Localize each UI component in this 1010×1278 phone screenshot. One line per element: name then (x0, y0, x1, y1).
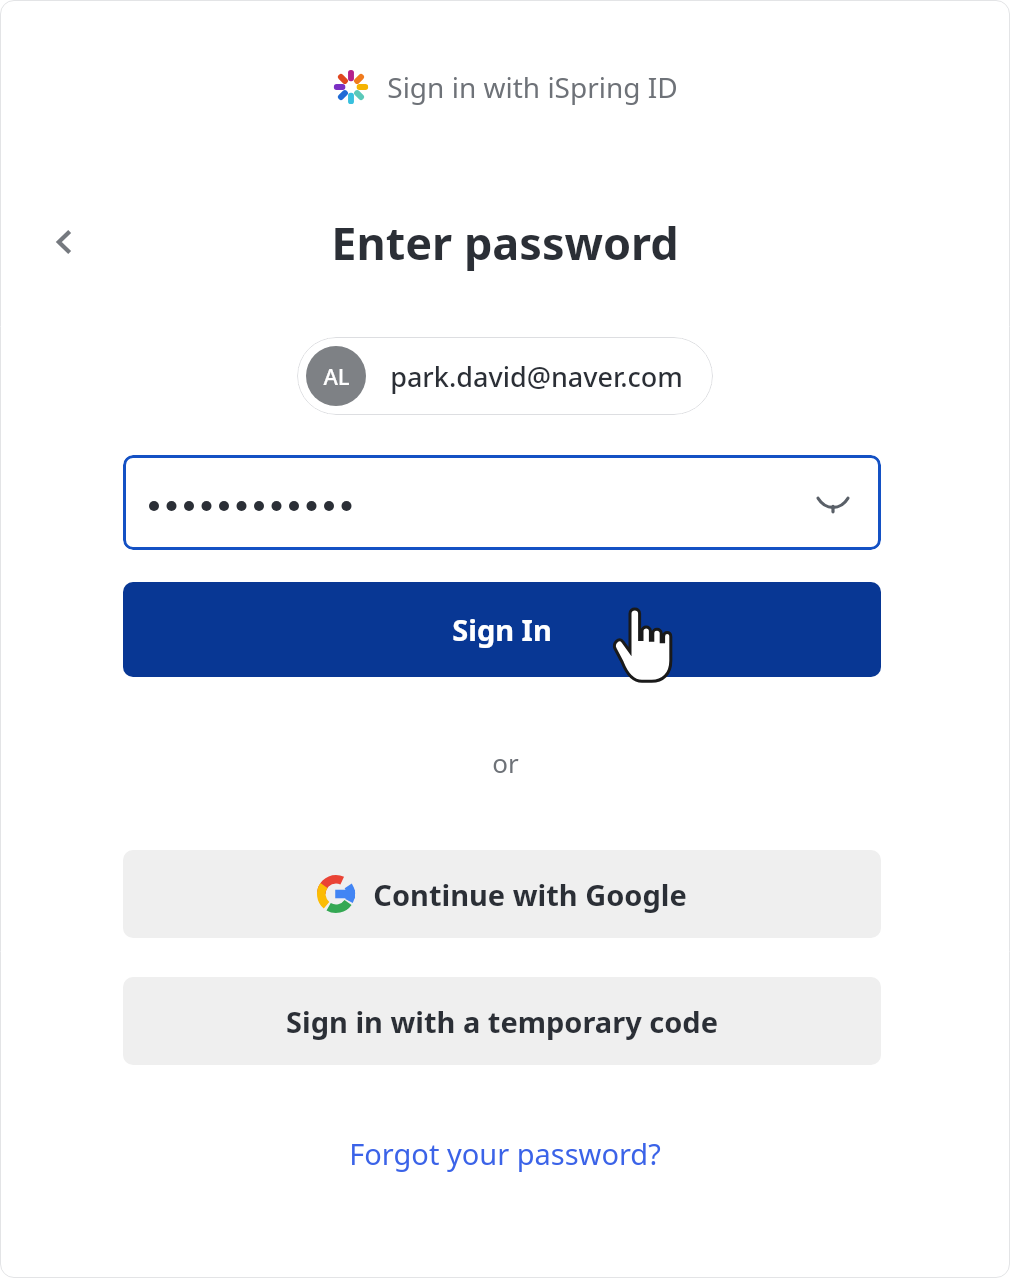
button[interactable]: Back (36, 214, 92, 270)
staticText: Enter password (331, 212, 679, 273)
staticText: Sign in with a temporary code (286, 1002, 718, 1041)
button[interactable]: Sign in with a temporary code (123, 977, 881, 1065)
staticText: park.david@naver.com (390, 358, 683, 395)
button[interactable]: Forgot your password? (339, 1128, 671, 1179)
staticText: or (492, 745, 519, 780)
button[interactable]: Sign In (123, 582, 881, 677)
staticText: Continue with Google (373, 875, 687, 914)
staticText: Sign In (452, 610, 552, 649)
button[interactable]: Sign in with iSpring ID (332, 68, 678, 106)
button[interactable]: AL (297, 337, 713, 415)
button[interactable]: Show password (811, 481, 855, 525)
staticText: AL (323, 361, 350, 391)
button[interactable]: Show password (123, 455, 881, 550)
staticText: Sign in with iSpring ID (387, 68, 678, 106)
staticText: Forgot your password? (349, 1134, 661, 1173)
button[interactable]: Continue with Google (123, 850, 881, 938)
